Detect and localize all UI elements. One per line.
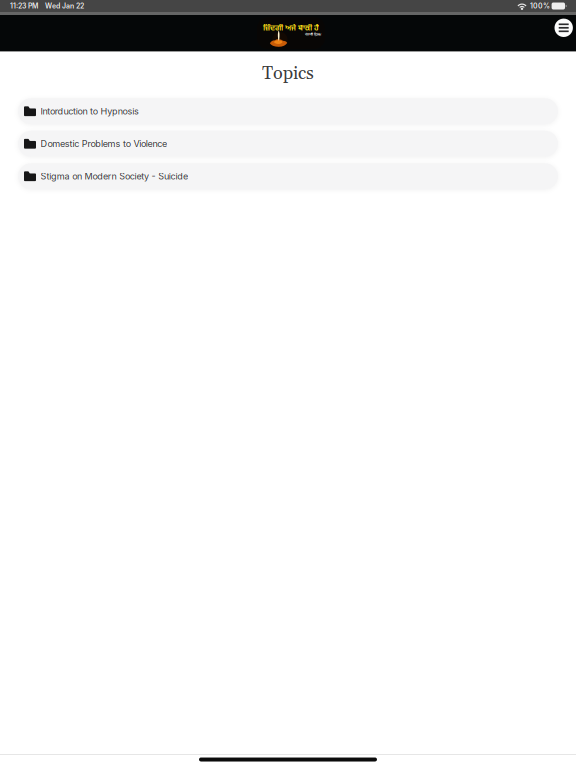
button[interactable]: Menu <box>552 16 576 40</box>
staticText: ਜ਼ਿੰਦਗੀ ਅਜੇ ਬਾਕੀ ਹੈ <box>263 24 319 33</box>
staticText: ਪੰਜਾਬੀ ਫ਼ਿਲਮ <box>305 32 321 37</box>
staticText: 11:23 PM <box>10 2 38 10</box>
staticText: Wed Jan 22 <box>45 2 84 10</box>
staticText: Intorduction to Hypnosis <box>41 106 139 117</box>
button[interactable]: Domestic Problems to Violence <box>18 131 558 157</box>
staticText: Topics <box>262 62 314 85</box>
staticText: Stigma on Modern Society - Suicide <box>41 171 188 182</box>
staticText: Domestic Problems to Violence <box>41 138 167 149</box>
button[interactable]: Stigma on Modern Society - Suicide <box>18 163 558 189</box>
staticText: 100% <box>530 2 550 10</box>
button[interactable]: Intorduction to Hypnosis <box>18 98 558 124</box>
